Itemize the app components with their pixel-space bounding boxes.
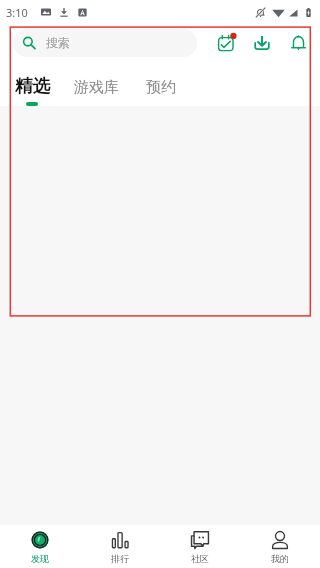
button[interactable]: 社区	[160, 525, 240, 568]
button[interactable]: 精选	[15, 57, 50, 106]
button[interactable]: 排行	[80, 525, 160, 568]
staticText: 搜索	[46, 35, 70, 50]
staticText: 排行	[111, 553, 129, 564]
staticText: 我的	[271, 553, 289, 564]
button[interactable]: 发现	[0, 525, 80, 568]
button[interactable]: 搜索	[13, 29, 197, 57]
staticText: 3:10	[6, 5, 28, 20]
button[interactable]: 游戏库	[74, 57, 119, 106]
button[interactable]: 我的	[240, 525, 320, 568]
button[interactable]: Downloads	[249, 29, 275, 55]
staticText: 精选	[15, 75, 50, 97]
staticText: 游戏库	[74, 78, 119, 97]
button[interactable]: 预约	[146, 57, 176, 106]
staticText: 社区	[191, 553, 209, 564]
staticText: 发现	[31, 553, 49, 564]
button[interactable]: Tasks	[213, 28, 239, 54]
button[interactable]: Notifications	[285, 29, 311, 55]
staticText: 预约	[146, 78, 176, 97]
